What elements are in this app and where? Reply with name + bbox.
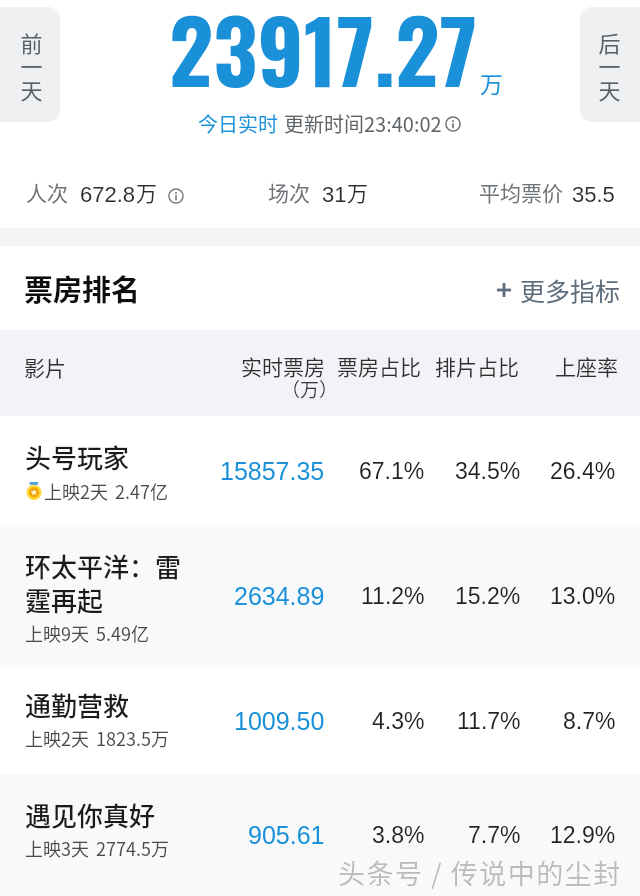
staticText: 2634.89: [234, 582, 325, 610]
staticText: （万）: [281, 375, 339, 403]
staticText: 13.0%: [550, 583, 616, 609]
staticText: 905.61: [248, 821, 325, 849]
staticText: 7.7%: [468, 822, 521, 848]
staticText: 头条号 / 传说中的尘封: [338, 853, 622, 892]
staticText: 8.7%: [563, 708, 616, 734]
button[interactable]: 后 一 天: [580, 7, 640, 122]
staticText: 上映3天: [25, 835, 89, 861]
staticText: 人次: [26, 177, 68, 207]
staticText: 票房排名: [24, 267, 141, 309]
staticText: 头号玩家: [25, 438, 130, 476]
staticText: 11.7%: [457, 708, 521, 734]
staticText: 31: [322, 182, 347, 207]
staticText: 3.8%: [372, 822, 425, 848]
staticText: 遇见你真好: [25, 796, 156, 834]
staticText: 上座率: [555, 351, 618, 381]
staticText: 前 一 天: [20, 26, 43, 106]
staticText: 万: [347, 177, 368, 207]
staticText: 排片占比: [435, 351, 519, 381]
staticText: 后 一 天: [598, 26, 621, 106]
staticText: 更多指标: [520, 272, 621, 308]
staticText: 34.5%: [455, 458, 521, 484]
staticText: 今日实时: [198, 109, 278, 138]
staticText: 672.8: [80, 182, 136, 207]
staticText: 15.2%: [455, 583, 521, 609]
staticText: 平均票价: [479, 177, 563, 207]
staticText: 4.3%: [372, 708, 425, 734]
staticText: 环太平洋：雷: [25, 547, 182, 585]
staticText: 2774.5万: [96, 835, 169, 861]
other: Info: [168, 188, 184, 204]
staticText: 上映2天: [44, 478, 108, 504]
staticText: 12.9%: [550, 822, 616, 848]
staticText: 1823.5万: [96, 725, 169, 751]
button[interactable]: 遇见你真好: [0, 774, 640, 896]
staticText: 35.5: [572, 182, 615, 207]
staticText: 26.4%: [550, 458, 616, 484]
staticText: 霆再起: [25, 581, 104, 619]
button[interactable]: 更多指标: [496, 272, 621, 308]
staticText: 23917.27: [169, 0, 478, 111]
staticText: 影片: [24, 352, 66, 382]
staticText: 通勤营救: [25, 686, 130, 724]
other: Info: [445, 116, 461, 132]
staticText: 1009.50: [234, 707, 325, 735]
button[interactable]: 环太平洋：雷: [0, 525, 640, 667]
button[interactable]: 前 一 天: [0, 7, 60, 122]
staticText: 实时票房: [241, 351, 325, 381]
staticText: 上映9天: [25, 620, 89, 646]
staticText: 票房占比: [337, 351, 421, 381]
staticText: 上映2天: [25, 725, 89, 751]
button[interactable]: 通勤营救: [0, 667, 640, 774]
staticText: 更新时间23:40:02: [284, 109, 442, 138]
staticText: 11.2%: [361, 583, 425, 609]
staticText: 2.47亿: [115, 478, 168, 504]
staticText: 67.1%: [359, 458, 425, 484]
staticText: 5.49亿: [96, 620, 149, 646]
staticText: 15857.35: [220, 457, 325, 485]
button[interactable]: 头号玩家: [0, 416, 640, 525]
staticText: 场次: [268, 177, 310, 207]
staticText: 万: [136, 177, 157, 207]
staticText: 万: [480, 66, 503, 99]
